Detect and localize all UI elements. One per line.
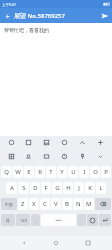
staticText: 展望 No.58769257	[14, 12, 97, 20]
staticText: G	[55, 184, 60, 192]
button[interactable]: Backspace	[95, 198, 111, 210]
staticText: V	[54, 200, 58, 208]
staticText: M	[86, 200, 92, 208]
button[interactable]: Tool 2	[37, 136, 55, 149]
button[interactable]: I	[79, 166, 89, 178]
staticText: L	[99, 184, 103, 192]
button[interactable]: Symbols	[1, 214, 15, 226]
button[interactable]: Recents	[80, 236, 96, 250]
staticText: H	[66, 184, 71, 192]
button[interactable]: H	[63, 182, 73, 194]
button[interactable]: N	[73, 198, 83, 210]
staticText: 上午9:41	[2, 2, 16, 7]
staticText: ●▮▯	[103, 2, 110, 6]
staticText: Y	[60, 168, 64, 176]
button[interactable]: Tool 5	[91, 136, 109, 149]
button[interactable]: Tool2 0	[3, 149, 20, 164]
staticText: Q	[4, 168, 9, 176]
button[interactable]: C	[40, 198, 50, 210]
staticText: U	[71, 168, 76, 176]
button[interactable]: O	[90, 166, 100, 178]
button[interactable]: F	[41, 182, 51, 194]
staticText: .	[81, 218, 83, 223]
button[interactable]: Tool 1	[20, 136, 37, 149]
staticText: N	[76, 200, 81, 208]
button[interactable]: Send	[97, 8, 112, 23]
button[interactable]: Space	[41, 214, 76, 226]
staticText: Z	[21, 200, 25, 208]
button[interactable]: G	[52, 182, 62, 194]
staticText: S	[22, 184, 26, 192]
button[interactable]: Back	[16, 236, 32, 250]
staticText: C	[43, 200, 47, 208]
staticText: E	[27, 168, 31, 176]
staticText: W	[15, 168, 21, 176]
staticText: A	[10, 184, 14, 192]
button[interactable]: Tool2 2	[37, 149, 55, 164]
button[interactable]: Z	[18, 198, 28, 210]
staticText: T	[49, 168, 53, 176]
button[interactable]: Tool2 1	[20, 149, 37, 164]
staticText: P	[104, 168, 108, 176]
button[interactable]: W	[13, 166, 23, 178]
button[interactable]: Emoji	[87, 214, 98, 226]
staticText: J	[78, 184, 80, 192]
button[interactable]: Tool 0	[3, 136, 20, 149]
staticText: I	[83, 168, 86, 176]
staticText: B	[65, 200, 69, 208]
button[interactable]: Tool2 3	[55, 149, 73, 164]
button[interactable]: D	[30, 182, 40, 194]
button[interactable]: Tool 4	[73, 136, 91, 149]
staticText: 123	[20, 218, 27, 223]
button[interactable]: Comma	[31, 214, 40, 226]
staticText: 符	[6, 218, 10, 223]
staticText: K	[88, 184, 92, 192]
button[interactable]: L	[96, 182, 106, 194]
button[interactable]: P	[101, 166, 111, 178]
staticText: 帮帮忙吧，看看我的	[4, 27, 49, 33]
staticText: O	[93, 168, 98, 176]
button[interactable]: Tool2 4	[73, 149, 91, 164]
button[interactable]: S	[18, 182, 29, 194]
staticText: 中英	[5, 202, 13, 207]
button[interactable]: Back	[0, 9, 14, 23]
button[interactable]: K	[85, 182, 95, 194]
staticText: D	[33, 184, 38, 192]
button[interactable]: M	[84, 198, 94, 210]
button[interactable]: B	[62, 198, 72, 210]
button[interactable]: Numbers	[16, 214, 30, 226]
button[interactable]: X	[29, 198, 39, 210]
button[interactable]: Q	[1, 166, 12, 178]
button[interactable]: V	[51, 198, 61, 210]
button[interactable]: Y	[57, 166, 67, 178]
button[interactable]: A	[6, 182, 17, 194]
button[interactable]: Hide keyboard	[91, 149, 109, 164]
staticText: F	[44, 184, 48, 192]
button[interactable]: Shift	[1, 198, 17, 210]
button[interactable]: R	[35, 166, 45, 178]
staticText: X	[32, 200, 36, 208]
button[interactable]: U	[68, 166, 78, 178]
button[interactable]: Tool 3	[55, 136, 73, 149]
button[interactable]: J	[74, 182, 84, 194]
button[interactable]: Home	[48, 236, 64, 250]
button[interactable]: E	[24, 166, 34, 178]
staticText: R	[38, 168, 42, 176]
staticText: ,	[35, 218, 37, 223]
button[interactable]: T	[46, 166, 56, 178]
button[interactable]: Enter	[99, 214, 111, 226]
